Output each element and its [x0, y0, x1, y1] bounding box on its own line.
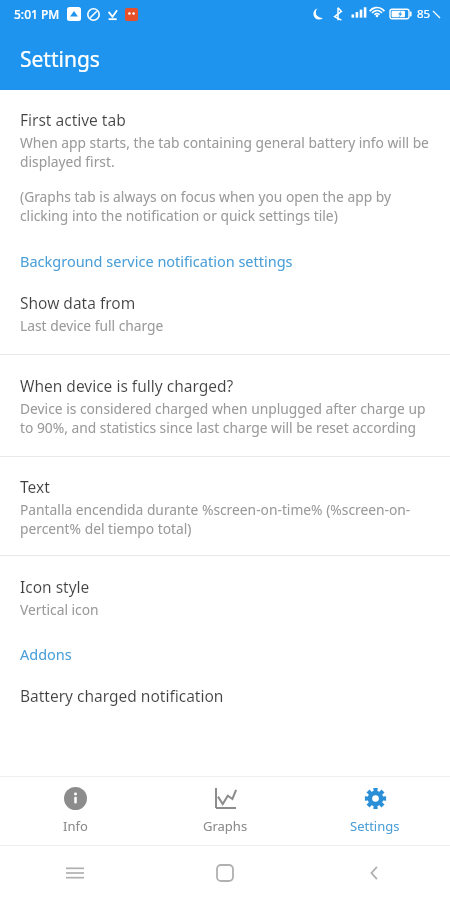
button[interactable]: Addons: [0, 641, 450, 667]
button[interactable]: Background service notification settings: [0, 247, 450, 275]
staticText: Battery charged notification: [20, 685, 224, 706]
staticText: Background service notification settings: [20, 251, 293, 271]
staticText: When device is fully charged?: [20, 375, 234, 396]
staticText: Info: [63, 817, 88, 835]
button[interactable]: Info: [0, 779, 150, 843]
staticText: Icon style: [20, 576, 90, 597]
staticText: Show data from: [20, 292, 136, 313]
button[interactable]: Graphs: [150, 779, 300, 843]
staticText: Graphs: [203, 817, 248, 835]
button[interactable]: Back: [300, 865, 450, 881]
button[interactable]: First active tab: [0, 90, 450, 231]
other: Settings: [364, 787, 387, 810]
staticText: When app starts, the tab containing gene…: [20, 133, 430, 171]
staticText: Vertical icon: [20, 600, 99, 619]
button[interactable]: Show data from: [0, 292, 450, 335]
staticText: Settings: [20, 45, 100, 74]
staticText: Settings: [350, 817, 400, 835]
staticText: Addons: [20, 644, 72, 664]
staticText: 5:01 PM: [14, 6, 60, 22]
other: Graphs: [214, 787, 237, 810]
button[interactable]: Home: [150, 865, 300, 881]
staticText: Last device full charge: [20, 316, 164, 335]
staticText: Pantalla encendida durante %screen-on-ti…: [20, 500, 430, 538]
staticText: Text: [20, 476, 50, 497]
button[interactable]: Recent apps: [0, 864, 150, 882]
staticText: 85: [417, 6, 431, 22]
staticText: Device is considered charged when unplug…: [20, 399, 430, 437]
button[interactable]: Battery charged notification: [0, 685, 450, 706]
staticText: (Graphs tab is always on focus when you …: [20, 187, 430, 225]
button[interactable]: Text: [0, 457, 450, 538]
staticText: First active tab: [20, 109, 126, 130]
button[interactable]: Settings: [300, 779, 450, 843]
button[interactable]: When device is fully charged?: [0, 355, 450, 437]
other: Info: [64, 787, 87, 810]
button[interactable]: Icon style: [0, 556, 450, 619]
